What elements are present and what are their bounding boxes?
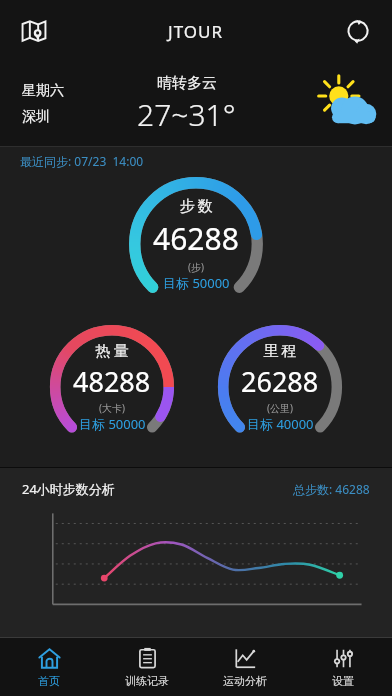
staticText: 目标 50000 (163, 274, 230, 292)
button[interactable]: 设置 (294, 638, 392, 696)
button[interactable]: 星期六 (0, 62, 392, 146)
staticText: 设置 (332, 674, 354, 688)
staticText: JTOUR (168, 20, 224, 43)
button[interactable]: 里程 (216, 323, 344, 451)
staticText: 目标 40000 (247, 415, 314, 433)
button[interactable]: 热量 (48, 323, 176, 451)
staticText: 首页 (38, 674, 60, 688)
staticText: 目标 50000 (79, 415, 146, 433)
button[interactable]: 首页 (0, 638, 98, 696)
staticText: (步) (188, 260, 204, 274)
staticText: 24小时步数分析 (22, 480, 115, 498)
staticText: 46288 (153, 218, 239, 259)
button[interactable]: 训练记录 (98, 638, 196, 696)
staticText: 里程 (262, 342, 298, 361)
staticText: (公里) (267, 401, 293, 415)
staticText: 深圳 (22, 108, 50, 126)
staticText: 26288 (241, 363, 319, 400)
button[interactable]: Map (10, 7, 58, 55)
button[interactable]: 步数 (127, 175, 265, 313)
staticText: 星期六 (22, 82, 64, 100)
staticText: 训练记录 (125, 674, 169, 688)
staticText: 总步数: 46288 (293, 481, 370, 497)
staticText: 最近同步: 07/23 14:00 (20, 153, 144, 169)
staticText: 48288 (73, 363, 151, 400)
staticText: 27~31° (137, 94, 236, 135)
staticText: (大卡) (99, 401, 125, 415)
button[interactable]: Sync (334, 7, 382, 55)
staticText: 晴转多云 (157, 74, 217, 93)
staticText: 步数 (178, 197, 214, 216)
staticText: 热量 (94, 342, 130, 361)
staticText: 运动分析 (223, 674, 267, 688)
button[interactable]: 运动分析 (196, 638, 294, 696)
